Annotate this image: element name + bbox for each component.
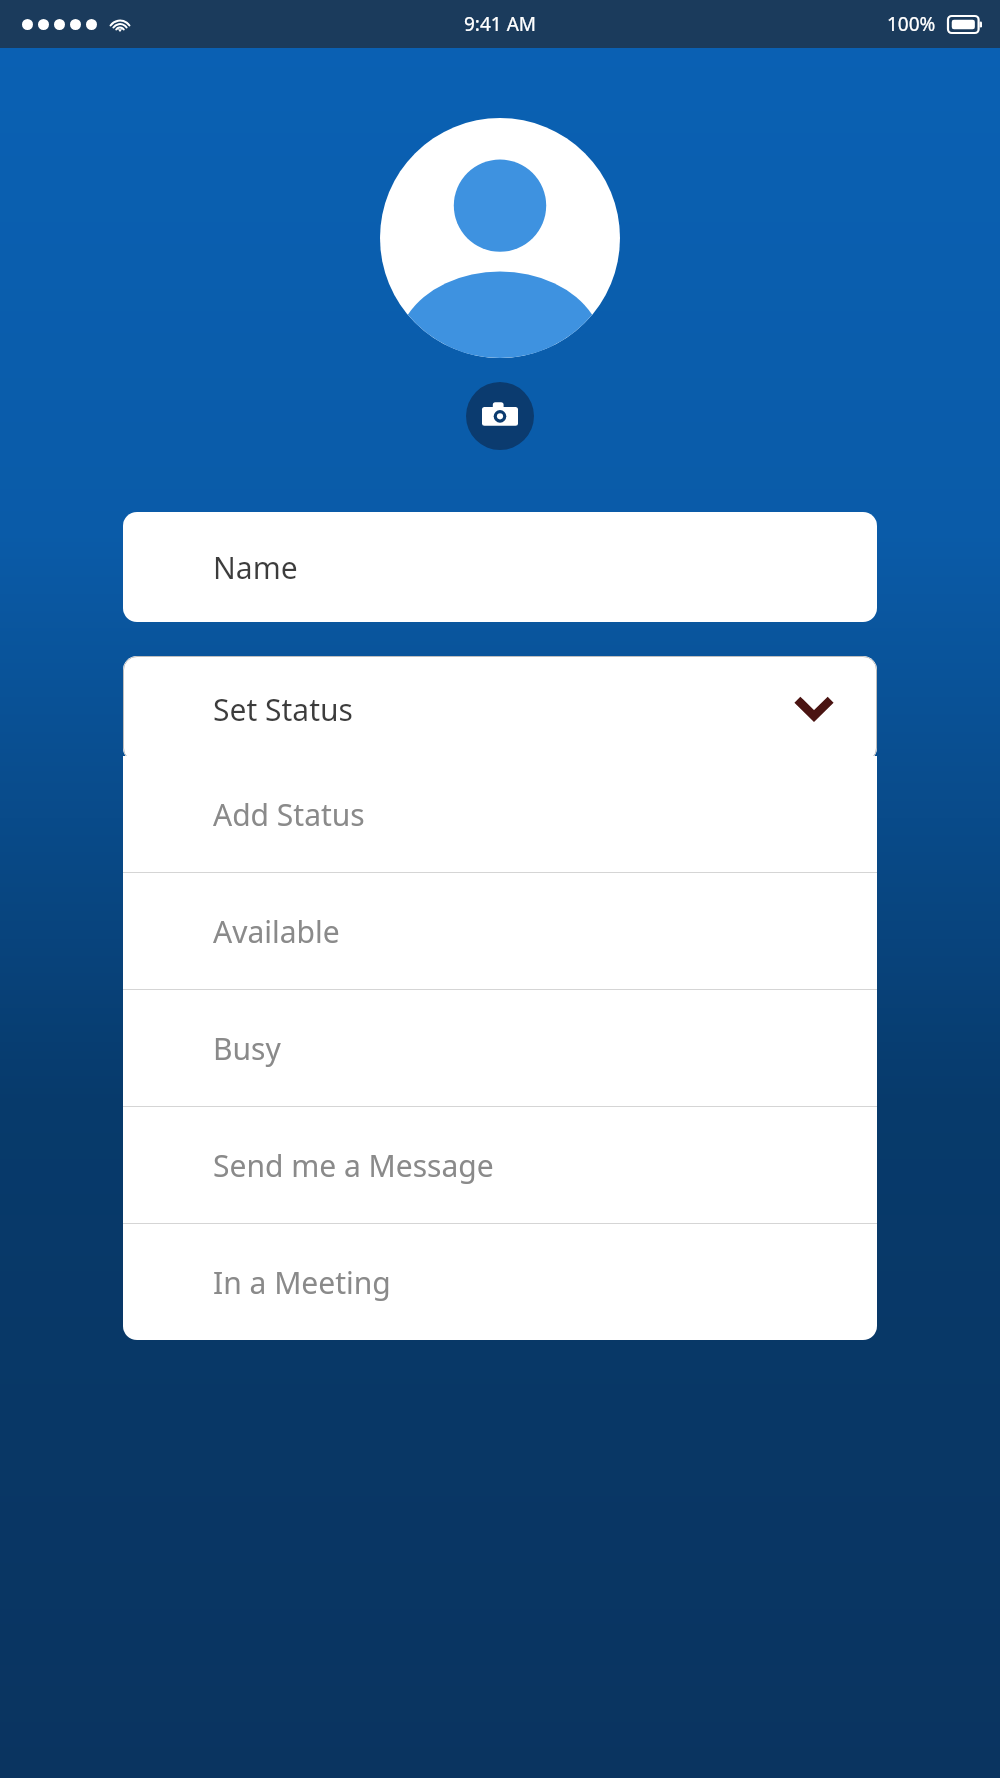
button[interactable]: Name — [123, 512, 877, 622]
button[interactable]: Add Status — [123, 756, 877, 872]
staticText: Busy — [213, 1028, 281, 1069]
button[interactable]: Available — [123, 873, 877, 989]
staticText: 9:41 AM — [464, 11, 537, 37]
staticText: Send me a Message — [213, 1145, 494, 1186]
staticText: Add Status — [213, 794, 365, 835]
staticText: Set Status — [213, 689, 353, 730]
button[interactable]: In a Meeting — [123, 1224, 877, 1340]
button[interactable]: Busy — [123, 990, 877, 1106]
button[interactable]: Set Status — [123, 656, 877, 762]
button[interactable]: Send me a Message — [123, 1107, 877, 1223]
staticText: 100% — [887, 11, 936, 37]
button[interactable]: Change profile photo — [466, 382, 534, 450]
staticText: In a Meeting — [213, 1262, 391, 1303]
staticText: Name — [213, 547, 298, 588]
staticText: Available — [213, 911, 340, 952]
